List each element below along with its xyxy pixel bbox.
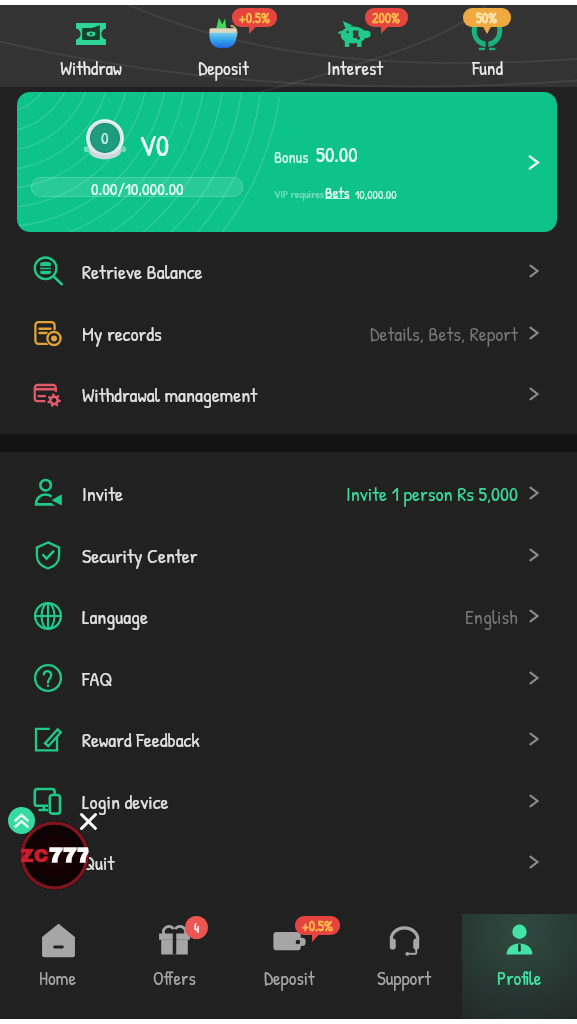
staticText: Language — [82, 603, 148, 630]
button[interactable]: Withdraw — [24, 5, 157, 87]
other: Home — [41, 923, 76, 958]
staticText: Support — [377, 965, 432, 991]
staticText: 0 — [101, 126, 109, 149]
button[interactable]: Close — [76, 809, 100, 833]
staticText: Details, Bets, Report — [370, 320, 518, 347]
button[interactable]: Language — [0, 585, 577, 647]
other: Offers — [157, 923, 192, 958]
button[interactable]: Deposit — [157, 5, 289, 87]
button[interactable]: Interest — [289, 5, 421, 87]
staticText: V0 — [139, 125, 170, 166]
staticText: ZC — [20, 845, 49, 866]
button[interactable]: VIP level 0 — [17, 92, 557, 232]
staticText: 777 — [49, 844, 89, 867]
staticText: Bonus — [274, 146, 309, 168]
staticText: Interest — [327, 55, 383, 81]
button[interactable]: My records — [0, 302, 577, 364]
button[interactable]: Withdrawal management — [0, 363, 577, 425]
staticText: English — [465, 603, 518, 630]
staticText: Invite 1 person Rs 5,000 — [346, 480, 518, 507]
staticText: Invite — [82, 480, 124, 507]
other: Deposit — [272, 923, 307, 958]
button[interactable]: Quit — [0, 831, 577, 893]
staticText: Retrieve Balance — [82, 258, 203, 285]
button[interactable]: Invite — [0, 462, 577, 524]
staticText: Offers — [153, 965, 196, 991]
button[interactable]: Deposit — [232, 914, 347, 1019]
button[interactable]: Offers — [116, 914, 232, 1019]
staticText: 50% — [476, 8, 498, 27]
other: Support — [387, 923, 422, 958]
staticText: Profile — [497, 965, 542, 991]
staticText: 10,000.00 — [355, 186, 397, 202]
staticText: Reward Feedback — [82, 726, 200, 753]
staticText: Home — [39, 965, 77, 991]
staticText: FAQ — [82, 665, 113, 692]
staticText: 4 — [194, 918, 200, 937]
button[interactable]: FAQ — [0, 647, 577, 709]
button[interactable]: ZC777 assistant — [20, 821, 89, 890]
button[interactable]: Profile — [462, 914, 577, 1019]
staticText: 50.00 — [316, 140, 358, 168]
staticText: Deposit — [264, 965, 315, 991]
staticText: Fund — [472, 55, 503, 81]
button[interactable]: Reward Feedback — [0, 708, 577, 770]
staticText: VIP requires — [274, 187, 325, 202]
other: Profile — [502, 923, 537, 958]
button[interactable]: Scroll to top — [8, 807, 35, 834]
staticText: Quit — [82, 849, 115, 876]
staticText: Login device — [82, 788, 169, 815]
button[interactable]: Security Center — [0, 524, 577, 586]
staticText: My records — [82, 320, 162, 347]
staticText: 0.00/10,000.00 — [91, 177, 184, 197]
button[interactable]: Support — [347, 914, 462, 1019]
staticText: 200% — [372, 8, 401, 27]
other: VIP level 0 — [85, 120, 125, 160]
button[interactable]: Home — [0, 914, 116, 1019]
other: Fund — [470, 17, 504, 51]
staticText: +0.5% — [239, 8, 270, 27]
other: Deposit — [206, 17, 240, 51]
staticText: Deposit — [198, 55, 249, 81]
button[interactable]: Login device — [0, 770, 577, 832]
button[interactable]: Fund — [421, 5, 553, 87]
staticText: Withdraw — [60, 55, 122, 81]
button[interactable]: Retrieve Balance — [0, 240, 577, 302]
staticText: Bets — [325, 182, 350, 202]
staticText: +0.5% — [302, 916, 333, 935]
other: Withdraw — [74, 17, 108, 51]
staticText: Withdrawal management — [82, 381, 258, 408]
other: Interest — [338, 17, 372, 51]
staticText: Security Center — [82, 542, 198, 569]
